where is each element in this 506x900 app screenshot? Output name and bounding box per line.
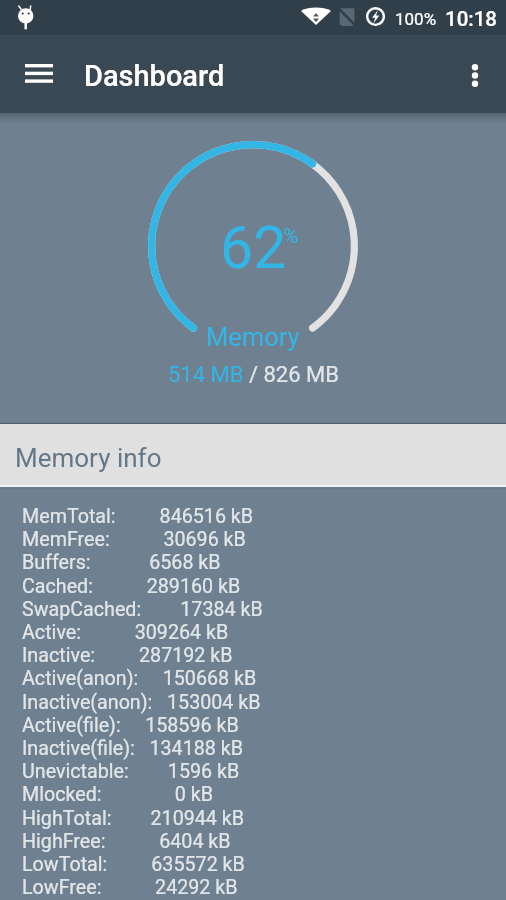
staticText: 62 (220, 213, 287, 282)
staticText: HighTotal: 210944 kB (22, 807, 245, 830)
staticText: SwapCached: 17384 kB (22, 598, 263, 621)
staticText: Active(file): 158596 kB (22, 714, 239, 737)
button[interactable]: Memory info (0, 423, 506, 487)
staticText: MemTotal: 846516 kB (22, 505, 254, 528)
staticText: LowFree: 24292 kB (22, 876, 238, 899)
staticText: Inactive: 287192 kB (22, 644, 233, 667)
staticText: Memory info (15, 443, 162, 473)
staticText: Dashboard (84, 59, 225, 93)
button[interactable]: Memory usage 62 percent, 514 MB of 826 M… (0, 113, 506, 423)
staticText: Mlocked: 0 kB (22, 783, 214, 806)
staticText: LowTotal: 635572 kB (22, 853, 245, 876)
staticText: Inactive(anon): 153004 kB (22, 691, 261, 714)
button[interactable]: More options (447, 47, 503, 103)
staticText: Active: 309264 kB (22, 621, 229, 644)
staticText: Memory (206, 322, 300, 352)
staticText: 514 MB / 826 MB (168, 362, 339, 388)
staticText: 100% (395, 9, 437, 29)
staticText: Active(anon): 150668 kB (22, 667, 257, 690)
staticText: Inactive(file): 134188 kB (22, 737, 243, 760)
staticText: HighFree: 6404 kB (22, 830, 231, 853)
staticText: % (283, 224, 299, 249)
staticText: Cached: 289160 kB (22, 575, 241, 598)
staticText: Unevictable: 1596 kB (22, 760, 240, 783)
staticText: 10:18 (445, 7, 498, 31)
button[interactable]: Open navigation drawer (11, 45, 67, 101)
staticText: MemFree: 30696 kB (22, 528, 246, 551)
staticText: Buffers: 6568 kB (22, 551, 221, 574)
